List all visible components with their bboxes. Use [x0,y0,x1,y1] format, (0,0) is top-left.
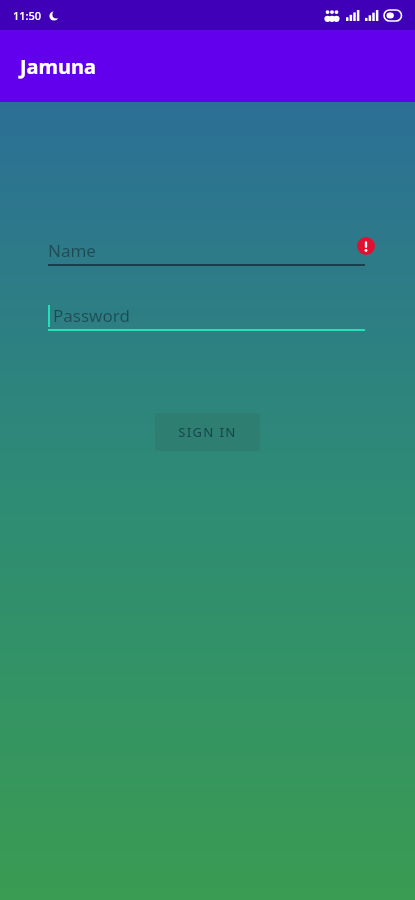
button[interactable]: Password [48,299,365,331]
staticText: Jamuna [20,53,97,80]
button[interactable]: Name [48,234,365,266]
staticText: 11:50 [13,8,42,23]
staticText: SIGN IN [178,423,237,441]
staticText: Password [53,304,130,327]
button[interactable]: SIGN IN [155,413,260,451]
staticText: Name [48,239,96,262]
button[interactable]: Error: Name required [357,237,375,255]
